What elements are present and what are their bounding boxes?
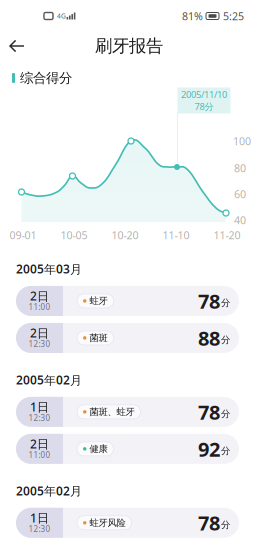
staticText: 11-20: [213, 228, 240, 242]
staticText: 40: [234, 213, 246, 227]
staticText: 蛀牙: [89, 295, 107, 307]
button[interactable]: 1日: [16, 508, 239, 538]
staticText: 1日: [30, 399, 49, 415]
staticText: 78: [198, 288, 220, 314]
staticText: 11:00: [28, 450, 50, 460]
staticText: 2005年03月: [16, 261, 82, 277]
staticText: 分: [221, 297, 230, 309]
staticText: 2日: [30, 325, 49, 341]
button[interactable]: 1日: [16, 397, 239, 427]
button[interactable]: 2日: [16, 323, 239, 353]
staticText: 80: [234, 161, 246, 175]
staticText: 2日: [30, 288, 49, 304]
staticText: 分: [221, 519, 230, 531]
staticText: 分: [221, 445, 230, 457]
staticText: 12:30: [28, 413, 50, 423]
staticText: 100: [233, 134, 251, 148]
staticText: 5:25: [223, 9, 244, 23]
staticText: 09-01: [9, 228, 36, 242]
staticText: 2005/11/10: [181, 88, 227, 101]
staticText: 88: [198, 325, 220, 351]
staticText: 60: [234, 187, 246, 201]
button[interactable]: 2日: [16, 286, 239, 316]
button[interactable]: 2日: [16, 434, 239, 464]
staticText: 4G: [57, 12, 66, 20]
staticText: 1日: [30, 510, 49, 526]
staticText: 2005年02月: [16, 372, 82, 388]
staticText: 12:30: [28, 523, 50, 534]
staticText: 分: [221, 334, 230, 346]
staticText: 78分: [194, 100, 213, 113]
staticText: 11:00: [28, 302, 50, 312]
staticText: 菌斑: [89, 332, 107, 344]
staticText: 菌斑、蛀牙: [89, 406, 134, 418]
staticText: 2005年02月: [16, 483, 82, 499]
staticText: 10-05: [60, 228, 87, 242]
staticText: 综合得分: [20, 70, 72, 86]
staticText: 12:30: [28, 339, 50, 349]
staticText: 81%: [182, 9, 203, 23]
staticText: 蛀牙风险: [89, 517, 125, 529]
staticText: 78: [198, 509, 220, 536]
button[interactable]: Back: [0, 32, 34, 60]
staticText: 92: [198, 436, 220, 462]
staticText: 11-10: [162, 228, 189, 242]
staticText: 分: [221, 408, 230, 420]
staticText: 2日: [30, 436, 49, 452]
staticText: 10-20: [111, 228, 138, 242]
staticText: 健康: [89, 443, 107, 455]
staticText: 78: [198, 399, 220, 425]
staticText: 刷牙报告: [95, 35, 163, 57]
